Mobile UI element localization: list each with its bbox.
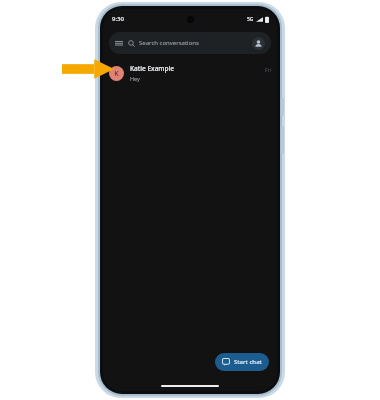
staticText: Start chat [234,358,262,366]
button[interactable]: Open navigation menu [109,32,271,54]
button[interactable]: K [103,60,277,86]
staticText: Hey [130,75,140,82]
staticText: 9:30 [112,15,124,23]
staticText: Fri [265,67,271,74]
staticText: Katie Example [130,64,175,73]
button[interactable]: Start chat [215,353,269,371]
other: Open navigation menu [115,39,123,47]
staticText: K [114,69,119,79]
button[interactable]: Account [252,37,265,50]
staticText: 5G [247,16,254,23]
staticText: Search conversations [139,39,199,47]
